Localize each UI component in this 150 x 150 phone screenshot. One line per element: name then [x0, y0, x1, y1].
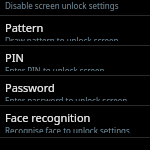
button[interactable]: Password: [0, 76, 150, 105]
button[interactable]: Disable screen unlock settings: [0, 0, 150, 15]
staticText: Enter password to unlock screen: [5, 95, 128, 101]
staticText: Draw pattern to unlock screen: [5, 35, 119, 41]
staticText: Disable screen unlock settings: [5, 0, 119, 11]
staticText: Pattern: [5, 20, 44, 35]
button[interactable]: Face recognition: [0, 106, 150, 137]
staticText: Enter PIN to unlock screen: [5, 65, 105, 71]
button[interactable]: PIN: [0, 46, 150, 75]
button[interactable]: Pattern: [0, 16, 150, 45]
staticText: Password: [5, 80, 55, 95]
staticText: Face recognition: [5, 110, 91, 125]
staticText: PIN: [5, 50, 24, 65]
staticText: Recognise face to unlock settings: [5, 125, 130, 133]
